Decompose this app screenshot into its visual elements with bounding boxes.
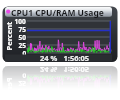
button[interactable]: CPU1 CPU/RAM Usage graph (0, 0, 120, 100)
